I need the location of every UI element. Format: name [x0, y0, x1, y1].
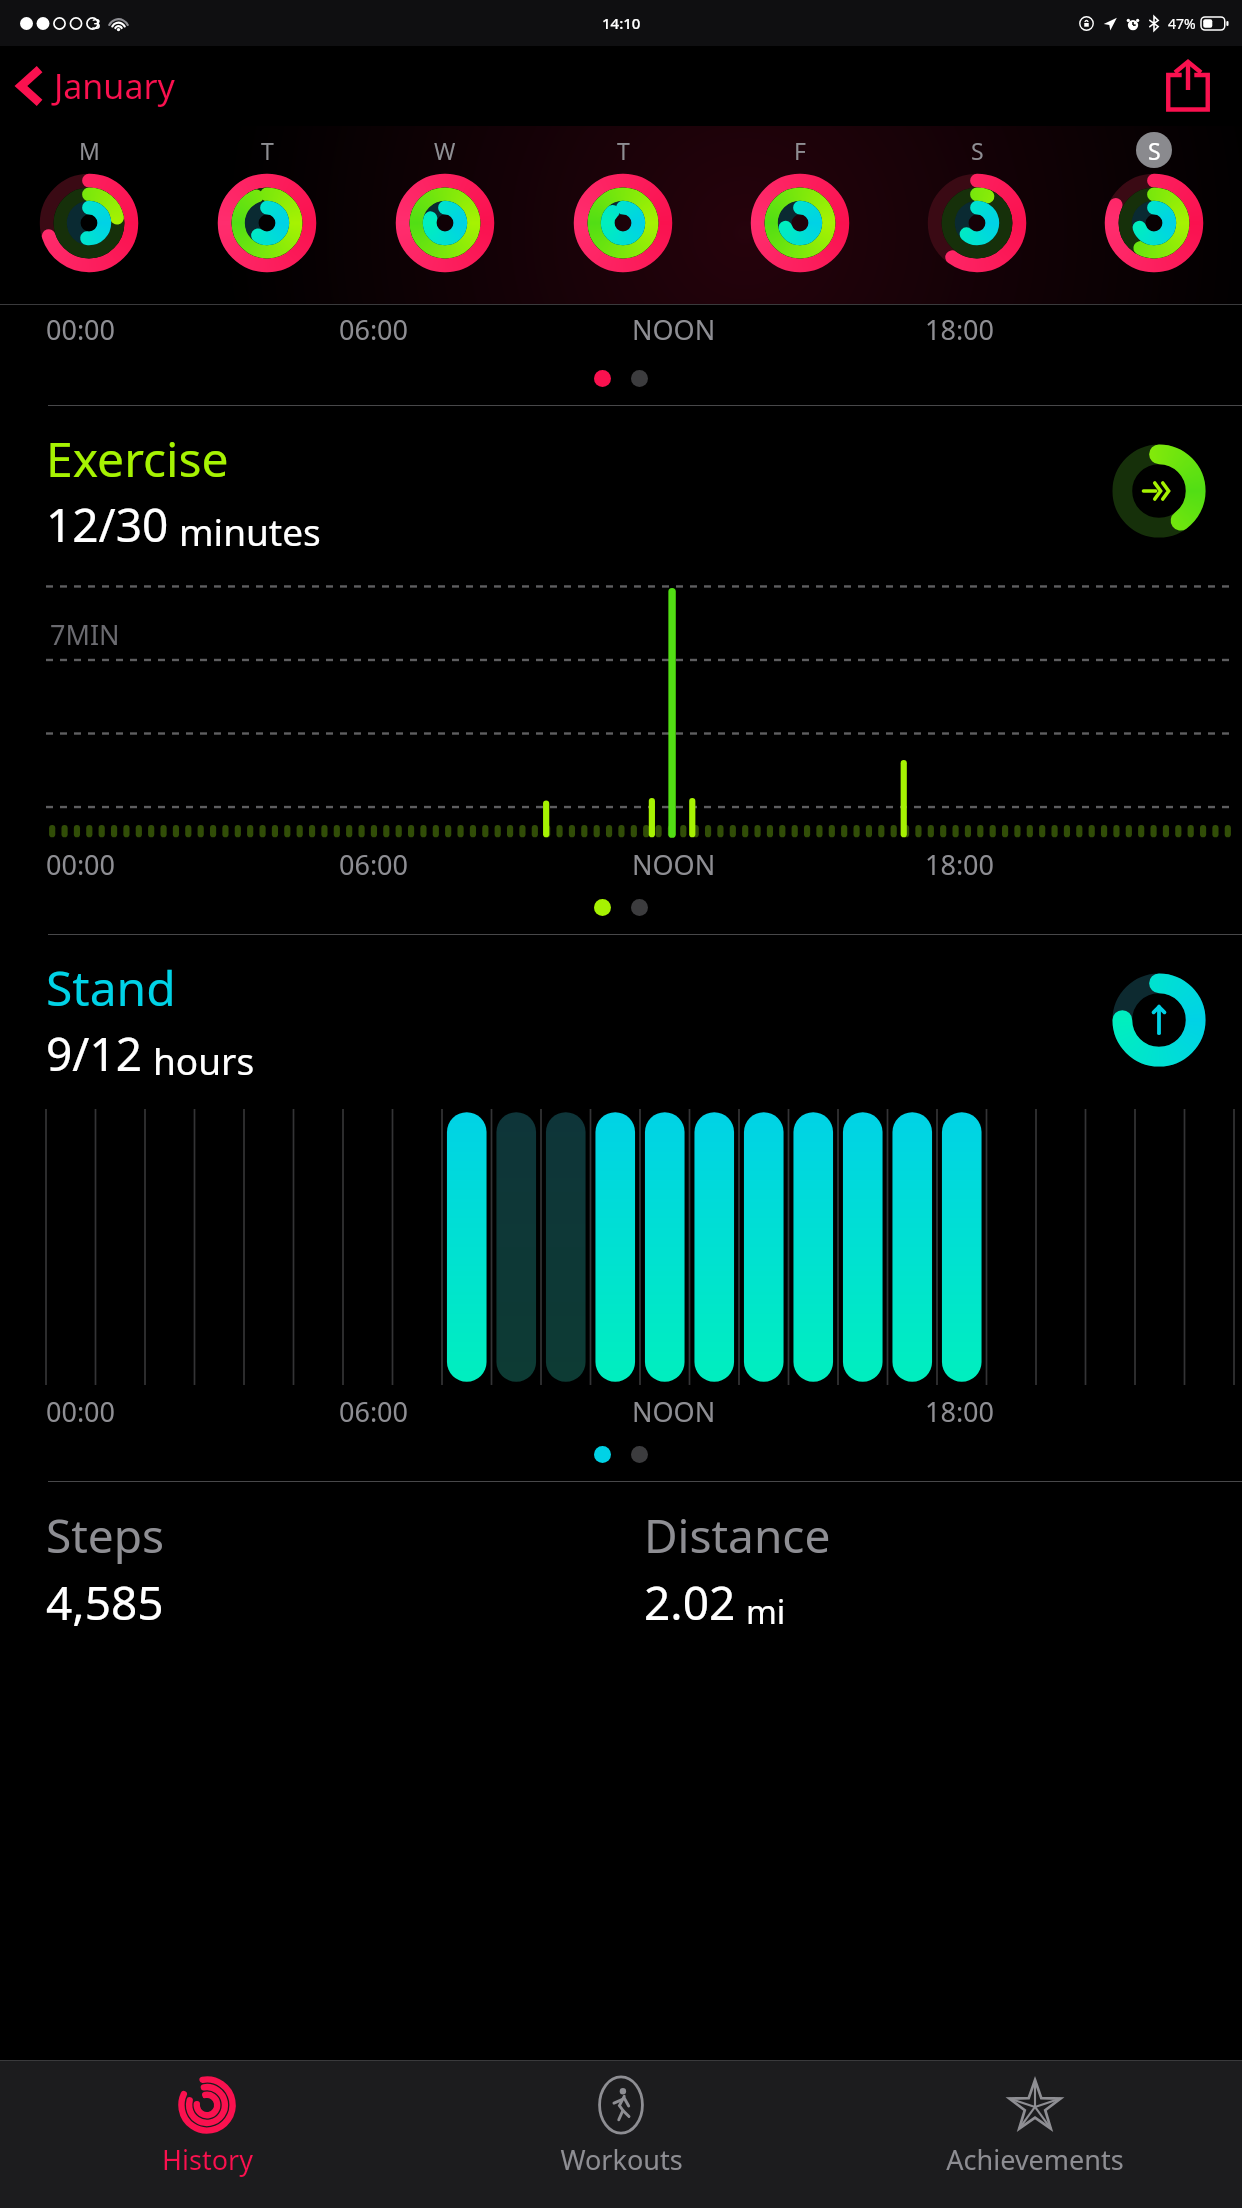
staticText: 3: [92, 13, 101, 33]
button[interactable]: S: [1065, 126, 1242, 304]
staticText: History: [162, 2141, 253, 2178]
staticText: Achievements: [946, 2141, 1124, 2178]
staticText: S: [971, 135, 984, 166]
staticText: 47%: [1168, 14, 1196, 33]
staticText: Workouts: [560, 2141, 683, 2178]
staticText: Steps: [46, 1504, 165, 1567]
staticText: 06:00: [339, 311, 409, 348]
staticText: NOON: [632, 311, 716, 348]
staticText: 14:10: [602, 13, 641, 33]
staticText: Exercise: [46, 426, 229, 491]
staticText: T: [261, 135, 274, 166]
button[interactable]: Stand goal: [1112, 973, 1206, 1067]
staticText: W: [434, 135, 456, 166]
staticText: minutes: [179, 506, 321, 556]
button[interactable]: Steps: [46, 1504, 644, 1634]
staticText: NOON: [632, 1393, 716, 1430]
button[interactable]: M: [0, 126, 178, 304]
staticText: 06:00: [339, 846, 409, 883]
staticText: M: [79, 135, 100, 166]
staticText: F: [794, 135, 806, 166]
staticText: 18:00: [925, 1393, 995, 1430]
staticText: 18:00: [925, 311, 995, 348]
button[interactable]: Achievements: [828, 2061, 1242, 2208]
staticText: 00:00: [46, 311, 116, 348]
button[interactable]: T: [534, 126, 711, 304]
staticText: 4,585: [46, 1571, 164, 1634]
button[interactable]: History: [0, 2061, 414, 2208]
staticText: Stand: [46, 955, 176, 1020]
staticText: 06:00: [339, 1393, 409, 1430]
button[interactable]: Share: [1158, 56, 1218, 116]
staticText: 00:00: [46, 846, 116, 883]
staticText: 12/30: [46, 493, 169, 556]
staticText: mi: [746, 1589, 786, 1634]
staticText: 7MIN: [50, 616, 120, 653]
button[interactable]: Distance: [644, 1504, 1242, 1634]
staticText: 2.02: [644, 1571, 736, 1634]
staticText: 9/12: [46, 1022, 143, 1085]
button[interactable]: Workouts: [414, 2061, 828, 2208]
button[interactable]: F: [711, 126, 888, 304]
staticText: T: [617, 135, 630, 166]
staticText: S: [1148, 135, 1161, 166]
staticText: 18:00: [925, 846, 995, 883]
staticText: Distance: [644, 1504, 831, 1567]
button[interactable]: S: [888, 126, 1065, 304]
button[interactable]: January: [18, 63, 175, 109]
button[interactable]: T: [178, 126, 356, 304]
staticText: 00:00: [46, 1393, 116, 1430]
button[interactable]: Exercise goal: [1112, 444, 1206, 538]
staticText: hours: [153, 1035, 255, 1085]
button[interactable]: W: [356, 126, 534, 304]
staticText: January: [54, 63, 175, 109]
staticText: NOON: [632, 846, 716, 883]
